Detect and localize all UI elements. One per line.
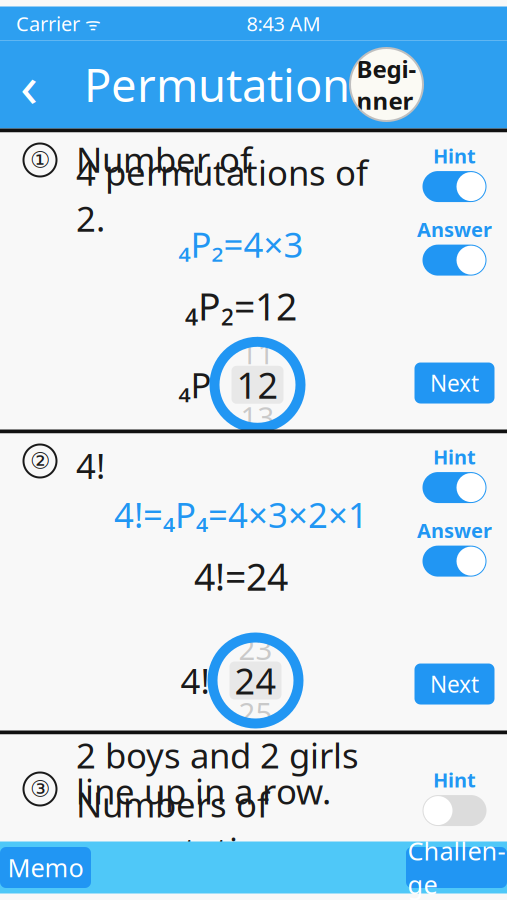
staticText: Beginner [356,53,416,116]
staticText: ① [30,147,50,173]
staticText: ② [30,448,50,474]
staticText: ‹ [20,45,38,123]
button[interactable]: Memo [0,847,91,888]
staticText: Numbers of permutations [76,781,297,873]
staticText: Hint [433,443,476,470]
staticText: 11 [240,333,274,372]
staticText: Hint [433,766,476,793]
button[interactable]: Next [414,362,494,403]
staticText: ₄P₂=12 [185,281,297,331]
staticText: 25 [238,693,272,732]
staticText: Hint [433,142,476,169]
button[interactable]: Next [414,663,494,704]
staticText: line up in a row. [76,768,331,814]
button[interactable]: Hint [411,443,497,503]
staticText: ᯤ [80,12,101,35]
staticText: 23 [238,629,272,668]
button[interactable]: Hint [411,766,497,826]
staticText: 13 [240,397,274,436]
staticText: 4 permutations of 2. [76,149,368,241]
staticText: 4!=₄P₄=4×3×2×1 [114,491,368,537]
staticText: 4! [76,442,105,488]
staticText: Permutation [84,54,350,115]
staticText: 12 [236,361,278,409]
button[interactable]: Hint [411,142,497,202]
staticText: 4!=24 [194,551,288,601]
staticText: Answer [417,216,492,243]
staticText: 8:43 AM [246,10,320,37]
staticText: ₄P₂=4×3 [178,221,303,267]
button[interactable]: Challenge [406,847,507,888]
staticText: Next [430,669,479,699]
staticText: Answer [417,517,492,544]
staticText: 24 [234,657,276,704]
button[interactable]: Answer [411,216,497,276]
staticText: ₄P [178,362,211,408]
staticText: Next [430,368,479,398]
staticText: Challenge [407,834,505,900]
button[interactable]: Back [0,49,58,119]
staticText: Number of [76,136,252,182]
button[interactable]: Answer [411,517,497,577]
staticText: Carrier [16,10,80,37]
staticText: Memo [7,851,83,884]
staticText: ③ [30,776,50,802]
staticText: 4! [180,657,209,703]
staticText: 2 boys and 2 girls [76,732,359,778]
